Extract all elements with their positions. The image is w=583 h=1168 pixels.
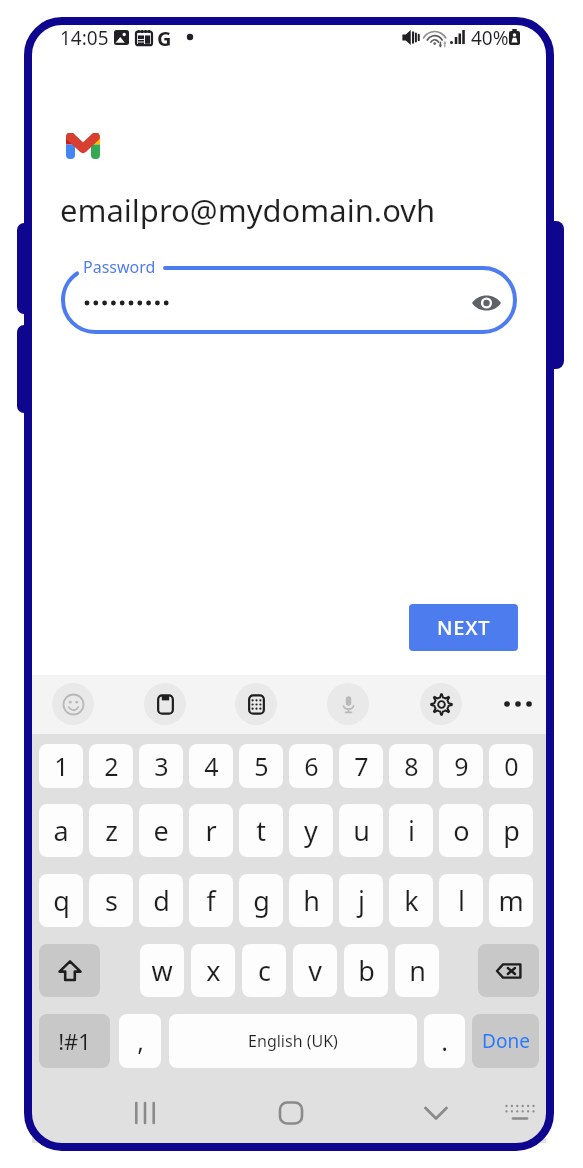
button[interactable]: d: [139, 874, 183, 927]
staticText: emailpro@mydomain.ovh: [60, 189, 436, 231]
staticText: 7: [354, 749, 369, 783]
button[interactable]: l: [439, 874, 483, 927]
button[interactable]: Shift: [39, 944, 100, 997]
staticText: x: [206, 952, 221, 989]
button[interactable]: 4: [189, 744, 233, 788]
staticText: u: [353, 812, 370, 849]
staticText: 5: [254, 749, 269, 783]
button[interactable]: i: [389, 804, 433, 857]
staticText: w: [151, 952, 173, 989]
staticText: r: [205, 812, 217, 849]
staticText: ,: [137, 1024, 144, 1058]
button[interactable]: g: [239, 874, 283, 927]
button[interactable]: a: [39, 804, 83, 857]
staticText: n: [409, 952, 426, 989]
staticText: i: [408, 812, 415, 849]
staticText: a: [53, 812, 69, 849]
button[interactable]: .: [424, 1014, 465, 1068]
staticText: j: [358, 882, 365, 919]
staticText: y: [304, 812, 318, 849]
staticText: m: [498, 882, 524, 919]
staticText: p: [503, 812, 520, 849]
button[interactable]: 0: [489, 744, 533, 788]
button[interactable]: x: [191, 944, 235, 997]
button[interactable]: 9: [439, 744, 483, 788]
button[interactable]: 5: [239, 744, 283, 788]
staticText: English (UK): [248, 1030, 338, 1052]
button[interactable]: w: [140, 944, 184, 997]
button[interactable]: u: [339, 804, 383, 857]
button[interactable]: p: [489, 804, 533, 857]
button[interactable]: h: [289, 874, 333, 927]
button[interactable]: z: [89, 804, 133, 857]
button[interactable]: j: [339, 874, 383, 927]
staticText: c: [258, 952, 271, 989]
button[interactable]: o: [439, 804, 483, 857]
staticText: q: [53, 882, 70, 919]
staticText: NEXT: [437, 614, 491, 641]
button[interactable]: m: [489, 874, 533, 927]
button[interactable]: Backspace: [478, 944, 539, 997]
button[interactable]: 3: [139, 744, 183, 788]
staticText: f: [206, 882, 216, 919]
staticText: 0: [504, 749, 519, 783]
staticText: b: [358, 952, 375, 989]
button[interactable]: Voice input: [327, 683, 369, 725]
button[interactable]: t: [239, 804, 283, 857]
button[interactable]: 1: [39, 744, 83, 788]
button[interactable]: Settings: [420, 683, 462, 725]
button[interactable]: 2: [89, 744, 133, 788]
staticText: e: [153, 812, 169, 849]
button[interactable]: c: [242, 944, 286, 997]
button[interactable]: Clipboard: [144, 683, 186, 725]
button[interactable]: Back: [412, 1089, 460, 1137]
staticText: l: [458, 882, 465, 919]
staticText: h: [303, 882, 320, 919]
button[interactable]: 6: [289, 744, 333, 788]
staticText: o: [453, 812, 470, 849]
staticText: k: [404, 882, 419, 919]
staticText: s: [105, 882, 118, 919]
button[interactable]: b: [344, 944, 388, 997]
staticText: 9: [454, 749, 469, 783]
staticText: 2: [104, 749, 119, 783]
staticText: G: [157, 25, 172, 49]
staticText: z: [105, 812, 118, 849]
button[interactable]: Home: [267, 1089, 315, 1137]
button[interactable]: 8: [389, 744, 433, 788]
staticText: 40%: [471, 25, 509, 49]
button[interactable]: Keypad: [235, 683, 277, 725]
button[interactable]: s: [89, 874, 133, 927]
button[interactable]: Emoji: [52, 683, 94, 725]
button[interactable]: ,: [119, 1014, 161, 1068]
button[interactable]: r: [189, 804, 233, 857]
staticText: v: [308, 952, 322, 989]
staticText: d: [153, 882, 170, 919]
button[interactable]: Hide keyboard: [496, 1089, 544, 1137]
button[interactable]: k: [389, 874, 433, 927]
button[interactable]: e: [139, 804, 183, 857]
staticText: !#1: [58, 1026, 91, 1056]
staticText: Done: [482, 1028, 530, 1054]
button[interactable]: Done: [472, 1014, 539, 1068]
staticText: t: [256, 812, 266, 849]
staticText: 14:05: [60, 25, 109, 49]
button[interactable]: n: [395, 944, 439, 997]
button[interactable]: 7: [339, 744, 383, 788]
button[interactable]: y: [289, 804, 333, 857]
button[interactable]: !#1: [39, 1014, 110, 1068]
staticText: 4: [204, 749, 219, 783]
button[interactable]: More options: [496, 682, 540, 726]
staticText: 8: [404, 749, 419, 783]
button[interactable]: NEXT: [409, 604, 518, 651]
staticText: 6: [304, 749, 319, 783]
button[interactable]: q: [39, 874, 83, 927]
button[interactable]: Recent apps: [121, 1089, 169, 1137]
staticText: .: [441, 1024, 448, 1058]
button[interactable]: f: [189, 874, 233, 927]
staticText: g: [253, 882, 270, 919]
button[interactable]: English (UK): [169, 1014, 417, 1068]
button[interactable]: Show password: [462, 279, 510, 327]
staticText: Password: [83, 256, 156, 278]
button[interactable]: v: [293, 944, 337, 997]
